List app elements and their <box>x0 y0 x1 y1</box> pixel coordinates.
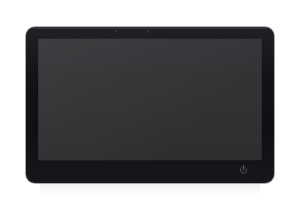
button[interactable]: All-in-one touch panel device <box>0 0 300 211</box>
